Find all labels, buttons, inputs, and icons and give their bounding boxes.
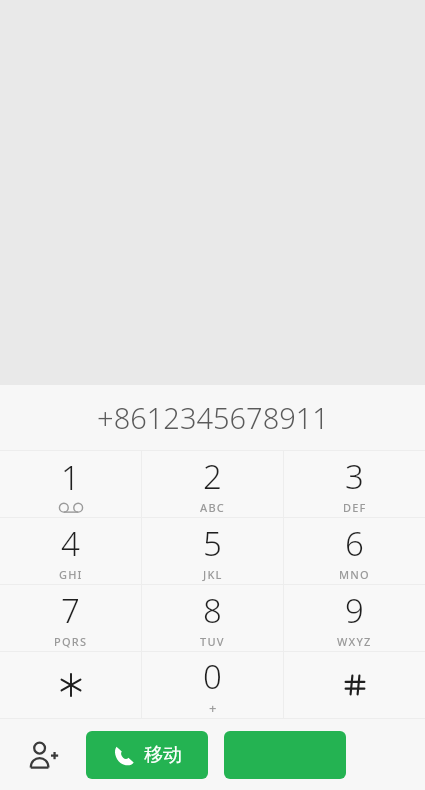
button[interactable]: 5 <box>142 518 283 584</box>
button[interactable]: 8 <box>142 585 283 651</box>
staticText: WXYZ <box>337 634 372 649</box>
button[interactable]: 2 <box>142 451 283 517</box>
staticText: 移动 <box>144 743 182 767</box>
button[interactable]: 6 <box>284 518 425 584</box>
button[interactable]: Call with second SIM <box>224 731 346 779</box>
staticText: MNO <box>339 567 370 582</box>
staticText: 0 <box>203 654 222 699</box>
staticText: 1 <box>61 455 80 500</box>
staticText: +8612345678911 <box>97 398 329 437</box>
staticText: 3 <box>345 454 364 499</box>
button[interactable] <box>284 652 425 718</box>
staticText: 4 <box>61 521 80 566</box>
staticText: TUV <box>200 634 225 649</box>
staticText: 6 <box>345 521 364 566</box>
staticText: 8 <box>203 588 222 633</box>
button[interactable]: 1 <box>0 451 141 517</box>
button[interactable]: 0 <box>142 652 283 718</box>
staticText: GHI <box>59 567 83 582</box>
button[interactable]: 移动 <box>86 731 208 779</box>
button[interactable] <box>0 652 141 718</box>
staticText: PQRS <box>54 634 88 649</box>
staticText: 2 <box>203 454 222 499</box>
staticText: 7 <box>61 588 80 633</box>
button[interactable]: 7 <box>0 585 141 651</box>
button[interactable]: 3 <box>284 451 425 517</box>
button[interactable]: Add contact <box>0 719 86 790</box>
staticText: + <box>209 699 217 717</box>
staticText: ABC <box>200 500 225 515</box>
button[interactable]: 4 <box>0 518 141 584</box>
staticText: DEF <box>343 500 367 515</box>
button[interactable]: 9 <box>284 585 425 651</box>
staticText: 5 <box>203 521 222 566</box>
staticText: JKL <box>203 567 223 582</box>
staticText: 9 <box>345 588 364 633</box>
